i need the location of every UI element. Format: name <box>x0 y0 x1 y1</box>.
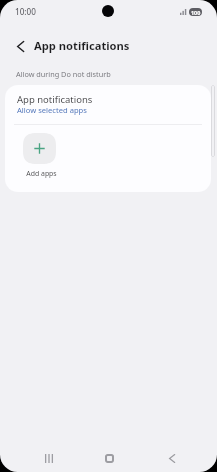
staticText: Allow during Do not disturb <box>16 69 111 79</box>
button[interactable]: Allow selected apps <box>17 105 87 115</box>
button[interactable]: Home <box>89 443 129 472</box>
staticText: Add apps <box>26 169 57 178</box>
button[interactable]: Back <box>152 443 192 472</box>
button[interactable]: Add apps <box>11 133 67 178</box>
staticText: 10:00 <box>15 6 36 17</box>
staticText: App notifications <box>17 93 93 106</box>
staticText: App notifications <box>34 38 130 53</box>
button[interactable]: Back <box>0 29 32 61</box>
staticText: 100 <box>191 9 201 16</box>
button[interactable]: Recent apps <box>29 443 69 472</box>
